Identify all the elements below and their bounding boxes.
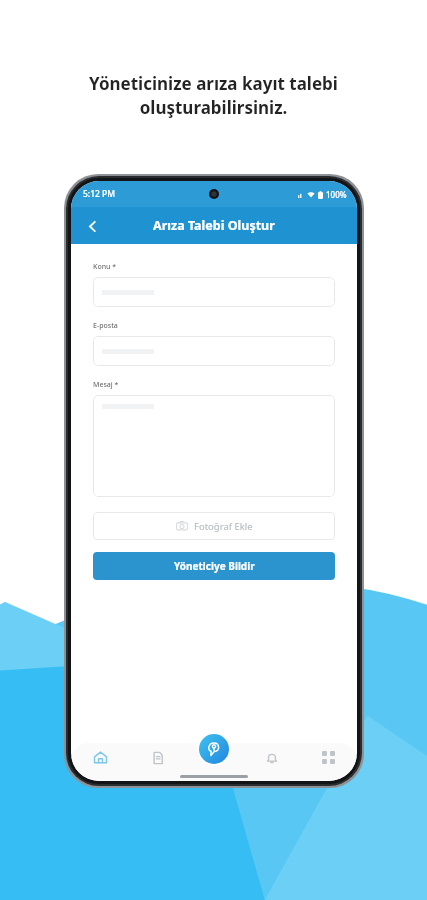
button[interactable]: Create request — [199, 734, 229, 764]
staticText: Arıza Talebi Oluştur — [153, 217, 275, 234]
staticText: Yöneticiye Bildir — [174, 559, 255, 573]
button[interactable]: Home — [71, 743, 129, 772]
staticText: Yöneticinize arıza kayıt talebi oluştura… — [89, 72, 338, 119]
button[interactable]: More — [300, 743, 357, 772]
button[interactable]: Back — [77, 211, 107, 241]
staticText: Konu * — [93, 262, 117, 272]
button[interactable]: Fotoğraf Ekle — [93, 512, 335, 540]
button[interactable] — [93, 395, 335, 497]
staticText: 5:12 PM — [83, 188, 116, 200]
staticText: Fotoğraf Ekle — [194, 520, 253, 533]
button[interactable]: Notifications — [243, 743, 300, 772]
staticText: 100% — [326, 189, 347, 200]
staticText: E-posta — [93, 321, 118, 331]
staticText: Mesaj * — [93, 380, 119, 390]
button[interactable]: Documents — [129, 743, 186, 772]
button[interactable] — [93, 277, 335, 307]
button[interactable]: Yöneticiye Bildir — [93, 552, 335, 580]
button[interactable] — [93, 336, 335, 366]
